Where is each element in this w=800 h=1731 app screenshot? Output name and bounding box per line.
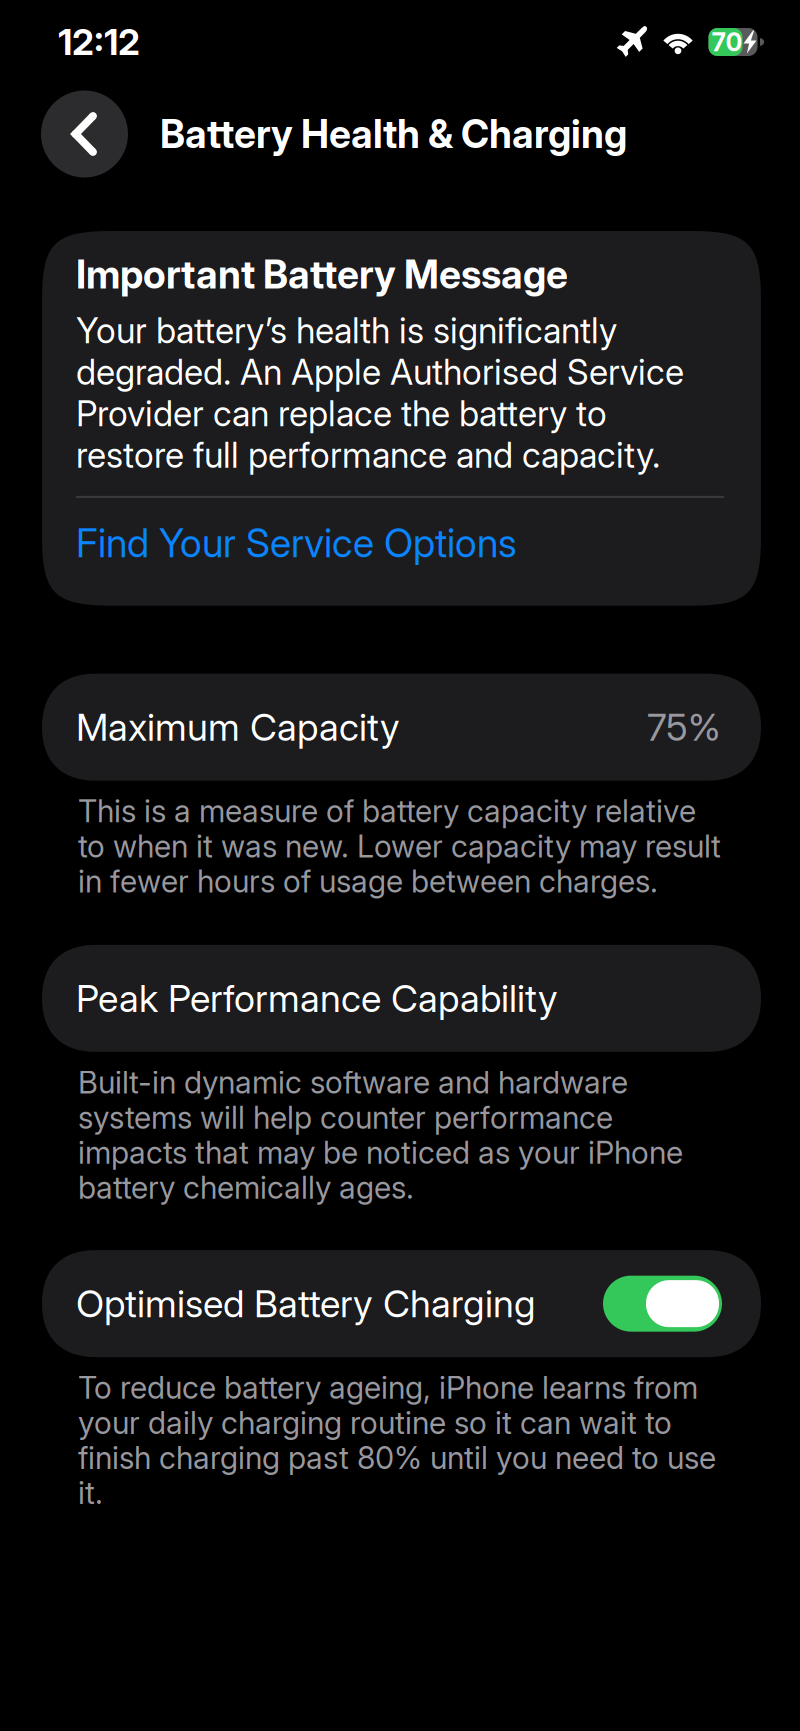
button[interactable]: Peak Performance Capability (42, 945, 761, 1052)
staticText: Your battery’s health is significantly d… (76, 310, 684, 476)
button[interactable]: Back (41, 90, 128, 177)
staticText: Built-in dynamic software and hardware s… (78, 1065, 683, 1205)
staticText: 70 (711, 31, 742, 53)
button[interactable]: Maximum Capacity (42, 674, 761, 781)
button[interactable]: Find Your Service Options (76, 520, 517, 567)
staticText: Find Your Service Options (76, 520, 517, 567)
button[interactable]: Optimised Battery Charging (603, 1276, 722, 1332)
staticText: To reduce battery ageing, iPhone learns … (78, 1370, 716, 1510)
staticText: Optimised Battery Charging (76, 1281, 536, 1326)
staticText: This is a measure of battery capacity re… (78, 794, 721, 899)
staticText: 75% (647, 705, 721, 750)
staticText: Battery Health & Charging (160, 111, 627, 157)
staticText: 12:12 (58, 20, 140, 64)
staticText: Maximum Capacity (76, 705, 400, 750)
staticText: Important Battery Message (76, 251, 568, 298)
staticText: Peak Performance Capability (76, 976, 558, 1021)
